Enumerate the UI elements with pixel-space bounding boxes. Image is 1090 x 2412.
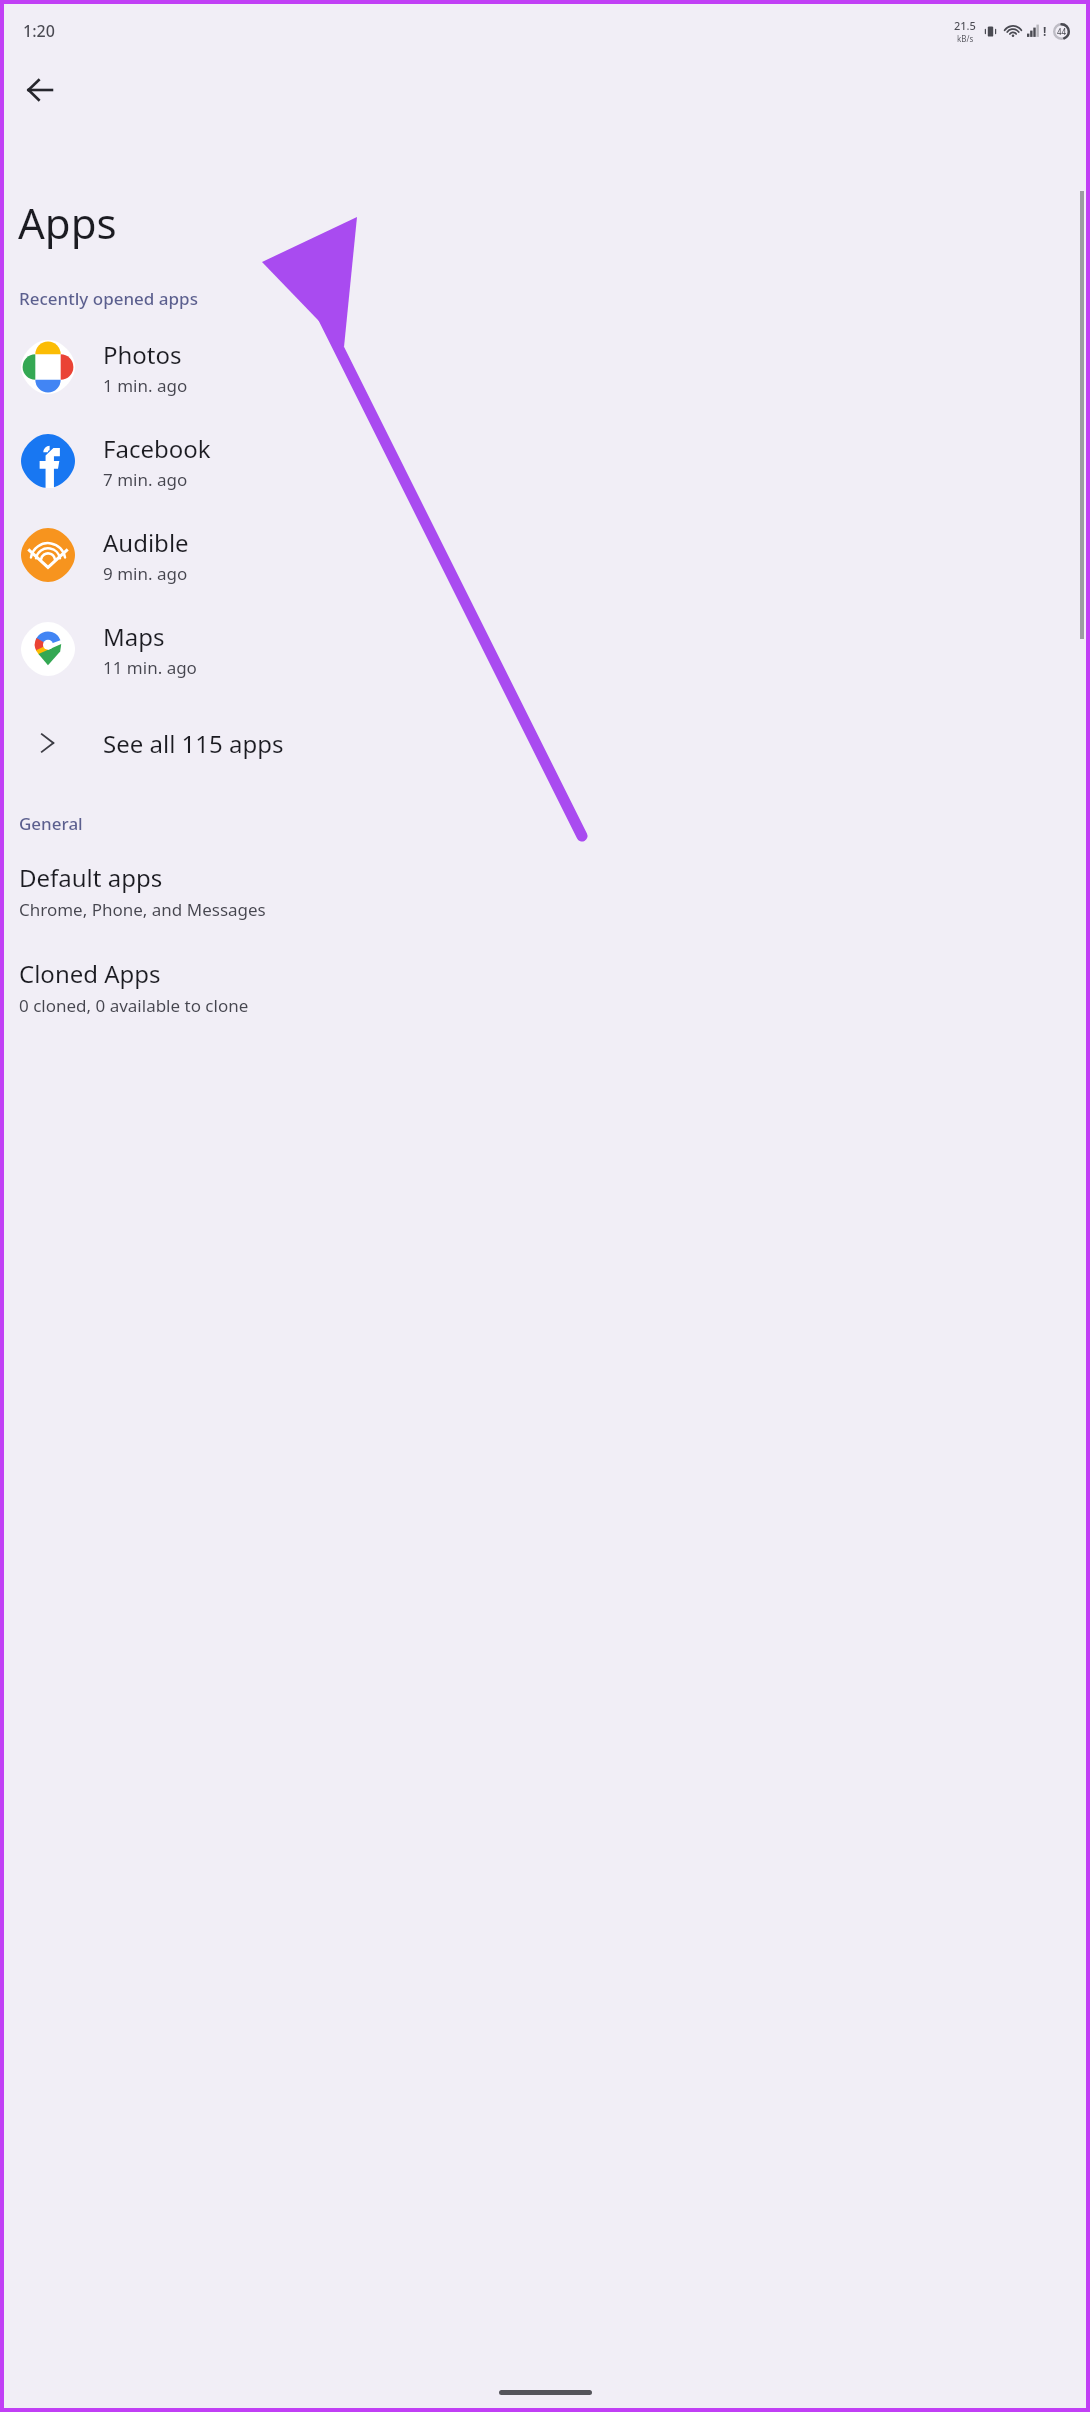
button[interactable]: Facebook: [4, 414, 1086, 508]
staticText: Apps: [18, 194, 117, 251]
button[interactable]: Default apps: [4, 843, 1086, 939]
button[interactable]: Photos: [4, 320, 1086, 414]
staticText: See all 115 apps: [103, 727, 284, 760]
staticText: 44: [1057, 26, 1067, 37]
staticText: 1 min. ago: [103, 374, 188, 397]
staticText: Facebook: [103, 432, 211, 465]
staticText: Audible: [103, 526, 189, 559]
staticText: 11 min. ago: [103, 656, 197, 679]
staticText: 7 min. ago: [103, 468, 188, 491]
staticText: General: [19, 812, 83, 835]
staticText: !: [1043, 23, 1047, 39]
staticText: Default apps: [19, 861, 163, 894]
staticText: 1:20: [23, 20, 55, 42]
button[interactable]: Audible: [4, 508, 1086, 602]
staticText: 9 min. ago: [103, 562, 188, 585]
staticText: 0 cloned, 0 available to clone: [19, 994, 249, 1017]
staticText: Cloned Apps: [19, 957, 161, 990]
staticText: Photos: [103, 338, 182, 371]
staticText: kB/s: [957, 33, 974, 44]
staticText: Maps: [103, 620, 165, 653]
button[interactable]: Cloned Apps: [4, 939, 1086, 1035]
staticText: Chrome, Phone, and Messages: [19, 898, 266, 921]
button[interactable]: Maps: [4, 602, 1086, 696]
button[interactable]: See all 115 apps: [4, 696, 1086, 790]
staticText: Recently opened apps: [19, 287, 198, 310]
button[interactable]: Back: [12, 62, 68, 118]
staticText: 21.5: [954, 18, 976, 33]
